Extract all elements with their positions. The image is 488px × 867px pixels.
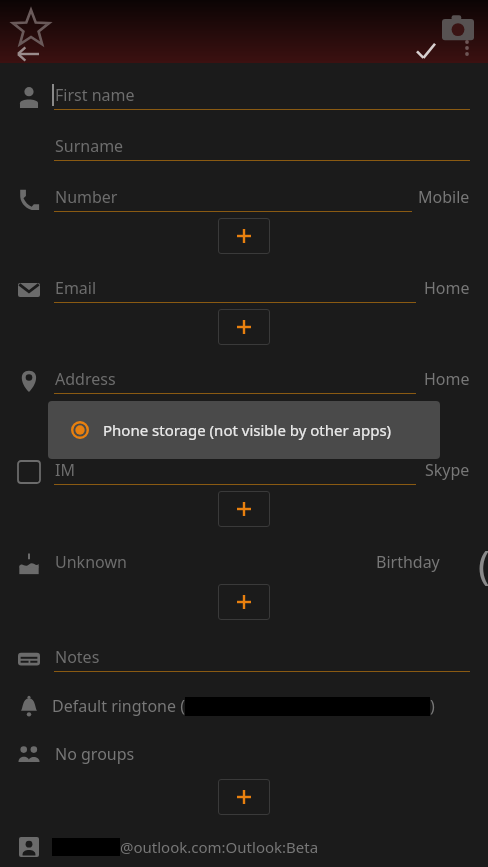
button[interactable]: Add xyxy=(218,779,270,815)
button[interactable]: First name xyxy=(0,78,488,116)
staticText: First name xyxy=(55,84,135,106)
staticText: Unknown xyxy=(55,551,127,573)
staticText: Phone storage (not visible by other apps… xyxy=(103,420,392,440)
staticText: Notes xyxy=(55,646,100,668)
button[interactable]: Email xyxy=(0,271,488,309)
button[interactable]: Surname xyxy=(0,129,488,167)
button[interactable]: Number xyxy=(0,180,488,218)
staticText: Surname xyxy=(55,135,124,157)
staticText: Default ringtone ( xyxy=(52,695,185,717)
button[interactable]: Address xyxy=(0,362,488,400)
button[interactable]: More options xyxy=(452,33,482,63)
staticText: Skype xyxy=(425,459,470,481)
staticText: Email xyxy=(55,277,97,299)
button[interactable]: IM xyxy=(0,453,488,491)
staticText: @outlook.com:Outlook:Beta xyxy=(120,837,319,857)
staticText: Birthday xyxy=(376,551,440,573)
button[interactable]: Add xyxy=(218,584,270,620)
button[interactable]: @outlook.com:Outlook:Beta xyxy=(0,829,488,865)
button[interactable]: Save xyxy=(408,33,444,69)
button[interactable]: Phone storage (not visible by other apps… xyxy=(48,401,440,459)
staticText: IM xyxy=(55,459,75,481)
staticText: Home xyxy=(424,368,470,390)
staticText: ( xyxy=(478,537,488,591)
button[interactable]: Unknown xyxy=(0,545,488,583)
button[interactable]: Back xyxy=(8,34,48,74)
button[interactable]: Default ringtone ( xyxy=(0,686,488,726)
button[interactable]: Notes xyxy=(0,640,488,678)
staticText: Home xyxy=(424,277,470,299)
staticText: Number xyxy=(55,186,118,208)
button[interactable]: Add xyxy=(218,218,270,254)
button[interactable]: No groups xyxy=(0,735,488,773)
button[interactable]: Add xyxy=(218,309,270,345)
button[interactable]: Favourite xyxy=(8,6,54,52)
staticText: Mobile xyxy=(418,186,470,208)
button[interactable]: Take photo xyxy=(440,10,476,46)
staticText: ) xyxy=(430,695,435,717)
staticText: No groups xyxy=(55,743,135,765)
button[interactable]: Add xyxy=(218,491,270,527)
staticText: Address xyxy=(55,368,116,390)
